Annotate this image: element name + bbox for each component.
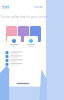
button[interactable] bbox=[5, 63, 41, 66]
button[interactable] bbox=[5, 55, 41, 58]
staticText: Choose a plan that fits your needs bbox=[0, 15, 47, 19]
button[interactable] bbox=[5, 59, 41, 62]
button[interactable] bbox=[7, 36, 21, 50]
button[interactable]: 9:41 bbox=[2, 4, 9, 10]
staticText: 9:41 bbox=[2, 4, 9, 10]
button[interactable] bbox=[24, 36, 38, 50]
button[interactable] bbox=[5, 51, 41, 54]
